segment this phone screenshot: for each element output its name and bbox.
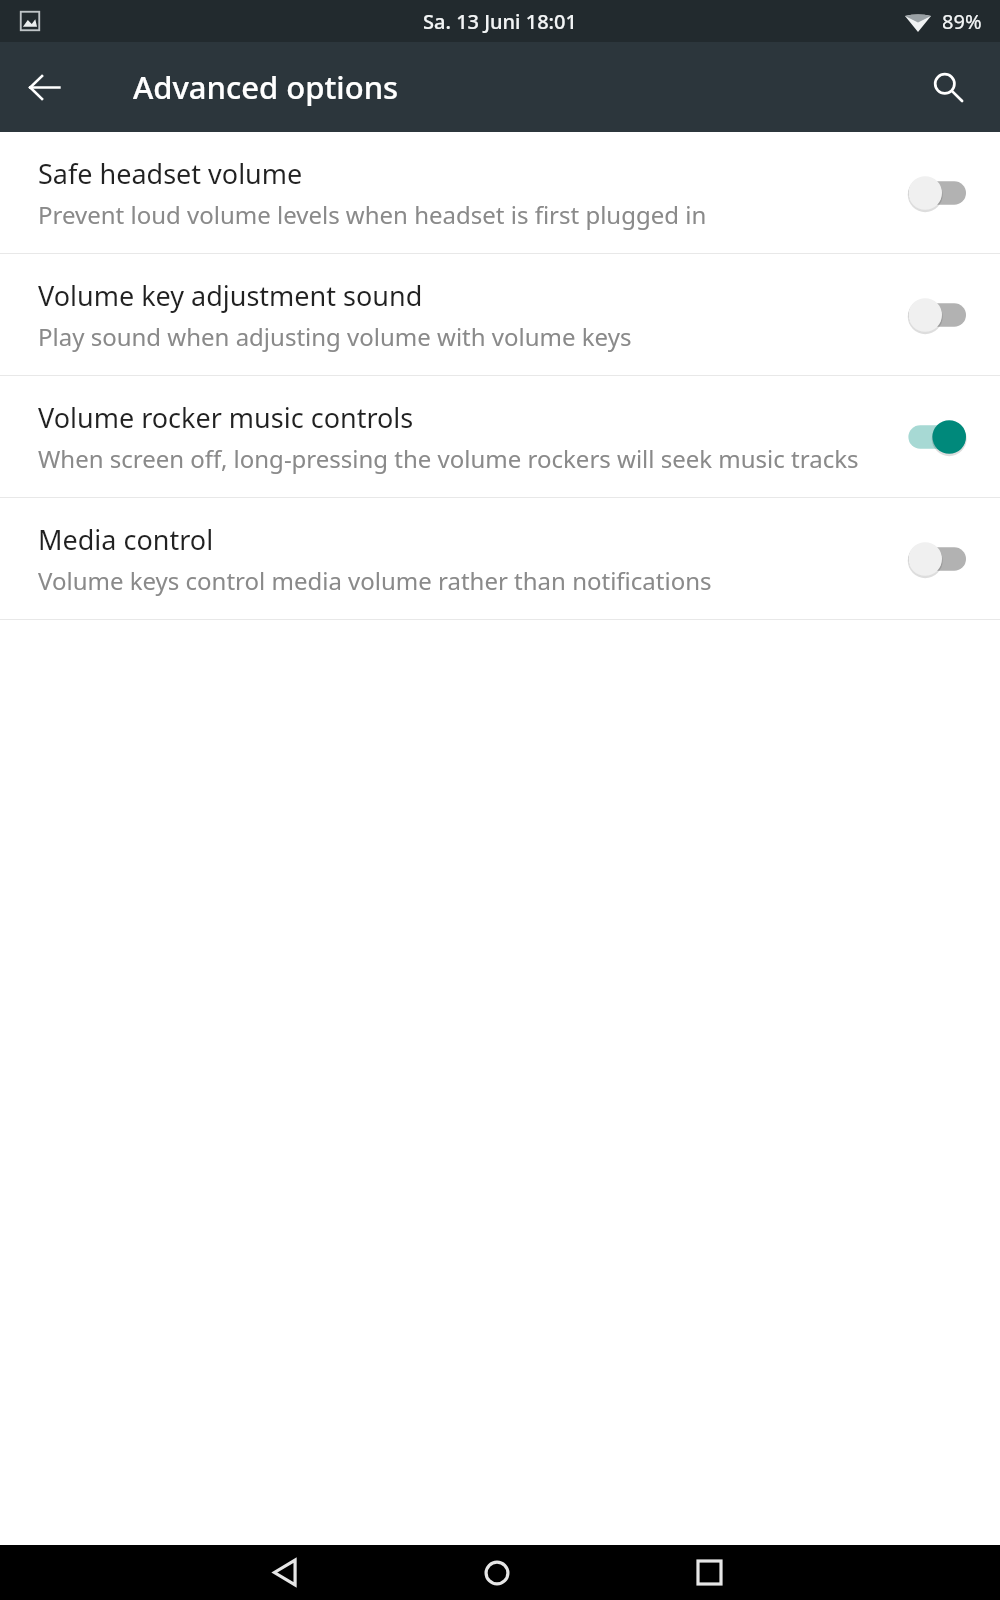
button[interactable]: Media control [0, 498, 1000, 619]
staticText: Advanced options [133, 66, 399, 108]
staticText: Sa. 13 Juni 18:01 [423, 8, 577, 35]
staticText: Play sound when adjusting volume with vo… [38, 320, 632, 353]
button[interactable]: Home [445, 1545, 549, 1600]
button[interactable]: Safe headset volume [0, 132, 1000, 253]
staticText: 89% [942, 8, 982, 35]
button[interactable]: Volume key adjustment sound [0, 254, 1000, 375]
button[interactable]: Volume rocker music controls [0, 376, 1000, 497]
staticText: When screen off, long-pressing the volum… [38, 442, 859, 475]
button[interactable]: Recents [657, 1545, 761, 1600]
button[interactable]: Search [920, 59, 976, 115]
button[interactable]: Off [886, 165, 966, 221]
staticText: Safe headset volume [38, 155, 303, 192]
staticText: Prevent loud volume levels when headset … [38, 198, 707, 231]
button[interactable]: Back [17, 51, 72, 123]
button[interactable]: Off [886, 531, 966, 587]
button[interactable]: Back [233, 1545, 337, 1600]
staticText: Volume keys control media volume rather … [38, 564, 712, 597]
staticText: Volume key adjustment sound [38, 277, 423, 314]
button[interactable]: Off [886, 287, 966, 343]
staticText: Volume rocker music controls [38, 399, 414, 436]
button[interactable]: On [886, 409, 966, 465]
staticText: Media control [38, 521, 214, 558]
